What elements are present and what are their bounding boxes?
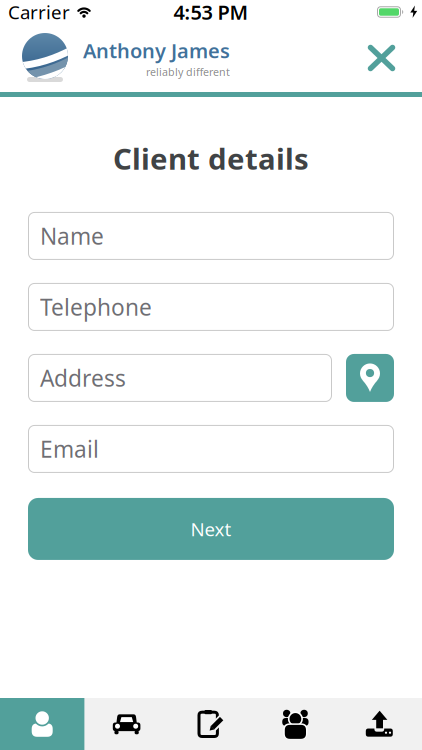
staticText: Name [40,221,104,251]
button[interactable]: Customers [253,698,338,750]
staticText: Anthony James [83,37,230,64]
button[interactable]: Vehicle [84,698,169,750]
staticText: 4:53 PM [173,0,248,25]
button[interactable]: Close [368,25,422,91]
button[interactable]: Upload [338,698,422,750]
button[interactable]: Report [169,698,253,750]
staticText: Address [40,363,126,393]
button[interactable]: Next [0,498,422,560]
button[interactable]: Locate address [346,354,394,402]
staticText: Email [40,434,99,464]
staticText: Next [190,517,231,541]
button[interactable]: Client [0,698,84,750]
staticText: reliably different [146,65,230,79]
staticText: Client details [113,139,309,178]
staticText: Telephone [40,292,152,322]
staticText: Carrier [8,0,70,24]
